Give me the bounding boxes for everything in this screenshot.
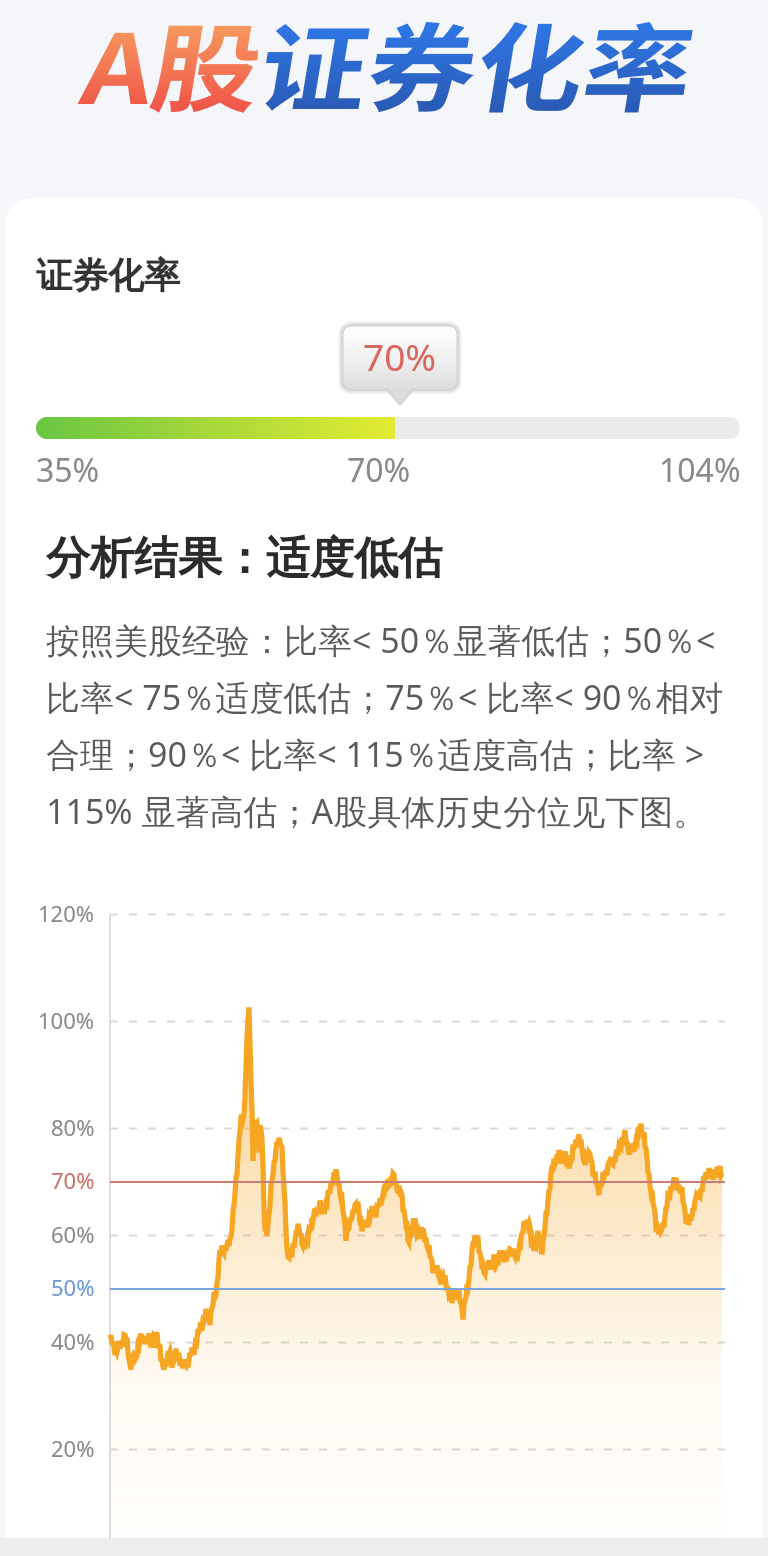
button[interactable]: A股证券化率历史走势图 <box>5 890 763 1538</box>
staticText: 50% <box>51 1272 95 1302</box>
button[interactable]: 当前证券化率 70% <box>341 324 459 409</box>
staticText: 分析结果：适度低估 <box>46 531 442 586</box>
button[interactable] <box>36 417 740 439</box>
staticText: 70% <box>51 1165 95 1195</box>
staticText: 40% <box>51 1326 95 1356</box>
staticText: 70% <box>347 448 411 492</box>
staticText: 120% <box>38 898 95 928</box>
staticText: 20% <box>51 1433 95 1463</box>
staticText: 35% <box>36 448 100 492</box>
staticText: 80% <box>51 1112 95 1142</box>
staticText: 100% <box>38 1005 95 1035</box>
staticText: 证券化率 <box>36 253 180 298</box>
staticText: 按照美股经验：比率< 50％显著低估；50％< 比率< 75％适度低估；75％<… <box>46 617 736 834</box>
staticText: 70% <box>363 331 437 381</box>
staticText: 104% <box>659 448 741 492</box>
staticText: 60% <box>51 1219 95 1249</box>
